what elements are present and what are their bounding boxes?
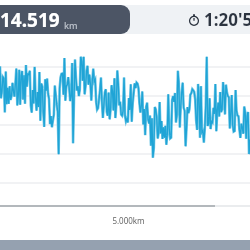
staticText: 1:20'50 (204, 8, 250, 31)
button[interactable]: 14.519 (0, 5, 130, 34)
button[interactable]: Duration (188, 8, 250, 31)
staticText: km (64, 19, 78, 31)
staticText: 14.519 (0, 7, 60, 33)
staticText: 5.000km (112, 215, 145, 226)
button[interactable] (0, 38, 250, 212)
other: Duration (188, 14, 200, 26)
